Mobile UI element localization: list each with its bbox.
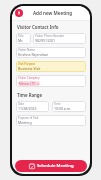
- button[interactable]: Visit Purpose: [16, 61, 86, 72]
- button[interactable]: Visitor Phone Number: [33, 33, 86, 44]
- staticText: Business Visit: [18, 66, 41, 71]
- button[interactable]: Visitor Name: [16, 47, 86, 58]
- staticText: Meteor LTD: [19, 82, 36, 86]
- staticText: Meeting: [18, 120, 32, 125]
- staticText: Visitor Name: [18, 48, 35, 52]
- button[interactable]: Meteor LTD: [18, 81, 40, 86]
- button[interactable]: Visitor Company: [16, 75, 86, 87]
- staticText: Schedule Meeting: [37, 163, 74, 169]
- staticText: Visitor Phone Number: [35, 34, 65, 38]
- staticText: Visitor Contact Info: [17, 24, 59, 30]
- staticText: Mr.: [18, 38, 23, 43]
- button[interactable]: Time: [52, 101, 86, 112]
- button[interactable]: Date: [16, 101, 49, 112]
- staticText: Krishna Rajendran: [18, 52, 49, 57]
- other: Schedule: [29, 163, 35, 169]
- staticText: 11/28/2023: [18, 106, 37, 111]
- staticText: Visit Purpose: [18, 62, 36, 66]
- staticText: Time: [54, 102, 61, 106]
- staticText: 10:00 a.m.: [54, 106, 71, 111]
- button[interactable]: Title: [16, 33, 31, 44]
- button[interactable]: Schedule: [15, 160, 87, 172]
- staticText: Visitor Company: [18, 76, 40, 80]
- staticText: 9829513201: [35, 38, 56, 43]
- button[interactable]: App logo: [15, 9, 23, 17]
- staticText: Purpose of Visit: [18, 116, 39, 120]
- staticText: Time Range: [17, 92, 43, 98]
- staticText: Date: [18, 102, 25, 106]
- button[interactable]: Purpose of Visit: [16, 115, 86, 126]
- staticText: Add new Meeting: [33, 10, 73, 16]
- staticText: Title: [18, 34, 24, 38]
